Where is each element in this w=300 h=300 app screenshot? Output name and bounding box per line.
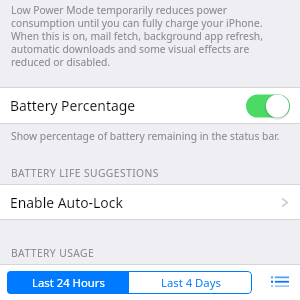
button[interactable]: Last 4 Days — [129, 271, 252, 294]
staticText: Last 4 Days — [161, 275, 221, 290]
staticText: BATTERY LIFE SUGGESTIONS — [11, 166, 159, 180]
staticText: Enable Auto-Lock — [10, 193, 123, 212]
button[interactable]: Enable Auto-Lock — [0, 185, 300, 219]
staticText: Battery Percentage — [10, 96, 136, 115]
button[interactable]: Battery Percentage toggle — [246, 93, 290, 119]
staticText: Last 24 Hours — [32, 275, 105, 290]
button[interactable]: Battery Percentage — [0, 88, 300, 123]
staticText: Low Power Mode temporarily reduces power… — [11, 3, 263, 69]
staticText: Show percentage of battery remaining in … — [11, 129, 280, 143]
button[interactable]: Last 24 Hours — [7, 271, 129, 294]
staticText: BATTERY USAGE — [11, 246, 95, 260]
button[interactable]: List view — [262, 265, 297, 300]
